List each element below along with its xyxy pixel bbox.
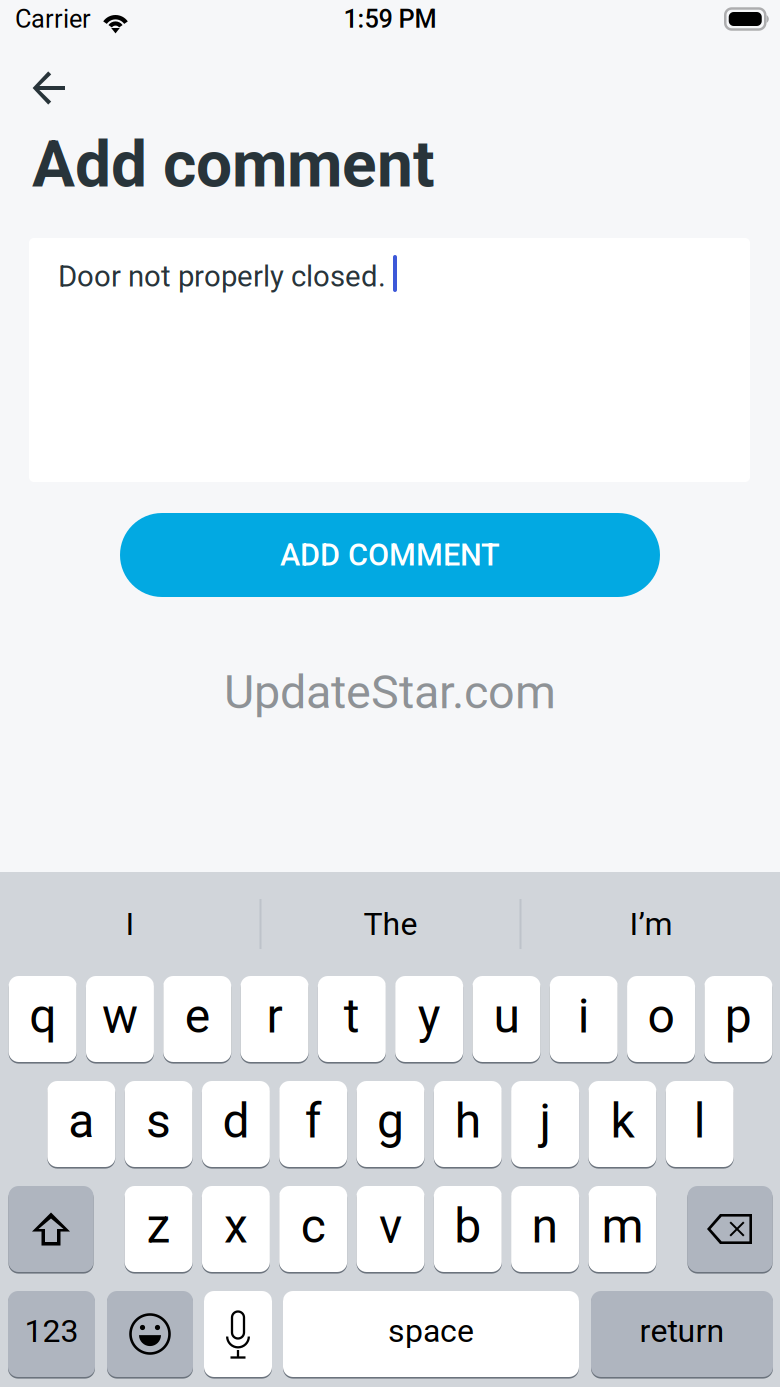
button[interactable]: p	[704, 975, 772, 1063]
staticText: q	[29, 988, 56, 1044]
button[interactable]: d	[202, 1080, 270, 1168]
staticText: v	[379, 1198, 402, 1254]
button[interactable]: o	[627, 975, 695, 1063]
staticText: x	[224, 1198, 248, 1254]
staticText: The	[363, 905, 417, 943]
staticText: n	[532, 1198, 559, 1254]
button[interactable]: u	[472, 975, 540, 1063]
staticText: m	[601, 1198, 643, 1254]
staticText: return	[639, 1312, 724, 1350]
button[interactable]: q	[9, 975, 77, 1063]
staticText: Carrier	[15, 4, 91, 34]
button[interactable]: v	[356, 1185, 424, 1273]
button[interactable]: t	[318, 975, 386, 1063]
button[interactable]: r	[240, 975, 308, 1063]
staticText: l	[694, 1093, 706, 1149]
staticText: e	[185, 988, 210, 1044]
staticText: p	[725, 988, 752, 1044]
staticText: f	[305, 1093, 322, 1149]
button[interactable]: Emoji	[107, 1290, 193, 1378]
button[interactable]: s	[125, 1080, 193, 1168]
button[interactable]: y	[395, 975, 463, 1063]
button[interactable]: g	[356, 1080, 424, 1168]
staticText: b	[454, 1198, 481, 1254]
staticText: space	[388, 1312, 474, 1350]
staticText: i	[578, 988, 590, 1044]
button[interactable]: h	[434, 1080, 502, 1168]
button[interactable]: w	[86, 975, 154, 1063]
button[interactable]: k	[588, 1080, 656, 1168]
staticText: I’m	[629, 905, 672, 943]
button[interactable]: e	[163, 975, 231, 1063]
button[interactable]: Back	[0, 56, 90, 121]
staticText: y	[418, 988, 441, 1044]
button[interactable]: f	[279, 1080, 347, 1168]
staticText: Door not properly closed.	[58, 259, 386, 294]
button[interactable]: The	[261, 885, 519, 963]
button[interactable]: return	[591, 1290, 773, 1378]
staticText: w	[102, 988, 138, 1044]
button[interactable]: x	[202, 1185, 270, 1273]
button[interactable]: space	[283, 1290, 579, 1378]
button[interactable]: Dictate	[204, 1290, 272, 1378]
staticText: ADD COMMENT	[280, 537, 500, 573]
staticText: z	[147, 1198, 171, 1254]
staticText: I	[125, 905, 134, 943]
button[interactable]: 123	[8, 1290, 95, 1378]
button[interactable]: b	[434, 1185, 502, 1273]
staticText: u	[493, 988, 519, 1044]
staticText: o	[647, 988, 674, 1044]
staticText: d	[222, 1093, 249, 1149]
button[interactable]: m	[588, 1185, 656, 1273]
button[interactable]: I	[0, 885, 259, 963]
staticText: Add comment	[32, 127, 435, 202]
button[interactable]: l	[666, 1080, 734, 1168]
staticText: 1:59 PM	[343, 4, 436, 34]
button[interactable]: Shift	[8, 1185, 93, 1273]
staticText: s	[146, 1093, 171, 1149]
staticText: c	[301, 1198, 326, 1254]
staticText: k	[610, 1093, 634, 1149]
button[interactable]: Delete	[687, 1185, 772, 1273]
staticText: t	[344, 988, 360, 1044]
button[interactable]: c	[279, 1185, 347, 1273]
button[interactable]: i	[550, 975, 618, 1063]
button[interactable]: I’m	[521, 885, 780, 963]
staticText: g	[377, 1093, 404, 1149]
button[interactable]: j	[511, 1080, 579, 1168]
button[interactable]: a	[47, 1080, 115, 1168]
staticText: a	[68, 1093, 94, 1149]
button[interactable]: n	[511, 1185, 579, 1273]
staticText: r	[266, 988, 282, 1044]
button[interactable]: ADD COMMENT	[120, 513, 660, 597]
staticText: h	[455, 1093, 481, 1149]
staticText: j	[540, 1093, 551, 1149]
staticText: UpdateStar.com	[224, 665, 556, 720]
staticText: 123	[24, 1312, 78, 1350]
button[interactable]: z	[125, 1185, 193, 1273]
